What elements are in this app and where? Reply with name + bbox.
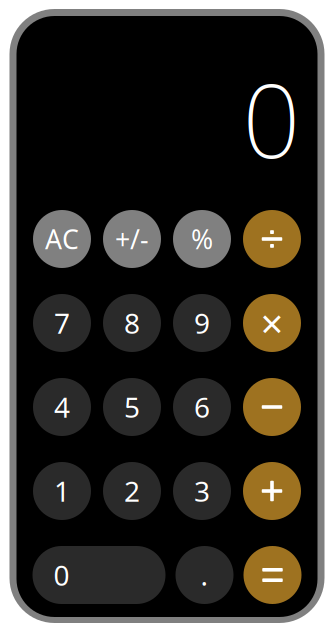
button[interactable]: 3	[173, 462, 231, 520]
button[interactable]: 1	[33, 462, 91, 520]
button[interactable]: 9	[173, 294, 231, 352]
staticText: 4	[54, 388, 70, 426]
button[interactable]: %	[173, 210, 231, 268]
staticText: 7	[54, 304, 70, 342]
staticText: 0	[53, 556, 69, 594]
staticText: 1	[54, 472, 70, 510]
staticText: .	[200, 556, 208, 594]
staticText: 8	[124, 304, 140, 342]
button[interactable]: Add	[243, 462, 301, 520]
staticText: ×	[260, 296, 283, 349]
button[interactable]: 4	[33, 378, 91, 436]
button[interactable]: 2	[103, 462, 161, 520]
button[interactable]: Multiply	[243, 294, 301, 352]
staticText: %	[191, 221, 213, 257]
button[interactable]: +/-	[103, 210, 161, 268]
staticText: 5	[124, 388, 140, 426]
button[interactable]: .	[175, 546, 233, 604]
staticText: 2	[124, 472, 140, 510]
button[interactable]: Equals	[243, 546, 301, 604]
staticText: 9	[194, 304, 210, 342]
staticText: AC	[45, 221, 79, 257]
button[interactable]: 0	[32, 546, 165, 604]
staticText: 0	[242, 51, 300, 186]
button[interactable]: 7	[33, 294, 91, 352]
button[interactable]: 5	[103, 378, 161, 436]
button[interactable]: Divide	[243, 210, 301, 268]
staticText: +/-	[115, 221, 149, 257]
button[interactable]: 8	[103, 294, 161, 352]
button[interactable]: 6	[173, 378, 231, 436]
staticText: 3	[194, 472, 210, 510]
staticText: 6	[194, 388, 210, 426]
button[interactable]: AC	[33, 210, 91, 268]
button[interactable]: Subtract	[243, 378, 301, 436]
